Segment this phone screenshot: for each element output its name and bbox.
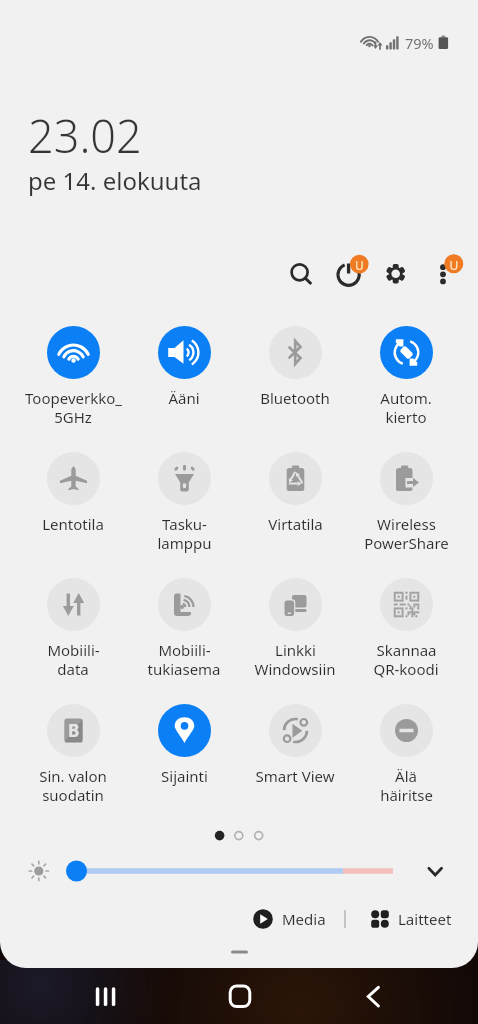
staticText: Virtatila xyxy=(268,514,323,534)
staticText: Windowsiin xyxy=(254,659,336,679)
button[interactable]: Power xyxy=(333,250,373,290)
button[interactable]: Autom. xyxy=(351,326,461,408)
button[interactable]: Ääni xyxy=(129,326,239,408)
staticText: Linkki xyxy=(275,640,316,660)
staticText: kierto xyxy=(385,407,427,427)
staticText: U xyxy=(354,257,365,273)
button[interactable]: Media xyxy=(252,905,326,933)
button[interactable]: Bluetooth xyxy=(240,326,350,408)
button[interactable]: Expand brightness xyxy=(415,851,455,891)
button[interactable]: More options xyxy=(432,250,472,290)
button[interactable]: Toopeverkko_ xyxy=(18,326,128,408)
staticText: PowerShare xyxy=(364,533,449,553)
button[interactable]: Brightness xyxy=(56,851,406,891)
button[interactable]: Laitteet xyxy=(370,905,452,933)
staticText: data xyxy=(57,659,89,679)
staticText: Sin. valon xyxy=(39,766,107,786)
staticText: Sijainti xyxy=(161,766,208,786)
staticText: tukiasema xyxy=(147,659,221,679)
staticText: 79% xyxy=(405,33,434,53)
staticText: Toopeverkko_ xyxy=(25,388,122,408)
button[interactable]: Sijainti xyxy=(129,704,239,786)
staticText: Autom. xyxy=(380,388,432,408)
staticText: suodatin xyxy=(42,785,104,805)
button[interactable]: Settings xyxy=(380,258,412,290)
staticText: U xyxy=(448,257,460,273)
staticText: Tasku- xyxy=(162,514,207,534)
button[interactable]: Skannaa xyxy=(351,578,461,660)
button[interactable]: Search xyxy=(284,257,316,289)
staticText: 23.02 xyxy=(28,105,142,166)
button[interactable]: Mobiili- xyxy=(18,578,128,660)
staticText: lamppu xyxy=(157,533,212,553)
staticText: 5GHz xyxy=(54,407,92,427)
button[interactable]: Mobiili- xyxy=(129,578,239,660)
staticText: Mobiili- xyxy=(158,640,211,660)
button[interactable]: Tasku- xyxy=(129,452,239,534)
button[interactable]: Lentotila xyxy=(18,452,128,534)
staticText: Skannaa xyxy=(376,640,437,660)
staticText: B xyxy=(68,719,80,742)
staticText: QR-koodi xyxy=(373,659,439,679)
staticText: Media xyxy=(282,909,326,929)
button[interactable]: Smart View xyxy=(240,704,350,786)
staticText: Ääni xyxy=(168,388,200,408)
staticText: Älä xyxy=(395,766,417,786)
staticText: Bluetooth xyxy=(260,388,330,408)
button[interactable]: Home xyxy=(210,976,270,1018)
staticText: pe 14. elokuuta xyxy=(28,164,202,197)
staticText: Mobiili- xyxy=(47,640,100,660)
button[interactable]: B xyxy=(18,704,128,786)
staticText: Laitteet xyxy=(398,909,452,929)
staticText: häiritse xyxy=(380,785,433,805)
button[interactable]: Älä xyxy=(351,704,461,786)
staticText: Wireless xyxy=(377,514,436,534)
button[interactable]: Wireless xyxy=(351,452,461,534)
button[interactable]: Virtatila xyxy=(240,452,350,534)
staticText: Smart View xyxy=(255,766,335,786)
staticText: Lentotila xyxy=(42,514,104,534)
button[interactable]: Recents xyxy=(76,976,136,1018)
button[interactable]: Linkki xyxy=(240,578,350,660)
button[interactable]: Back xyxy=(343,976,403,1018)
